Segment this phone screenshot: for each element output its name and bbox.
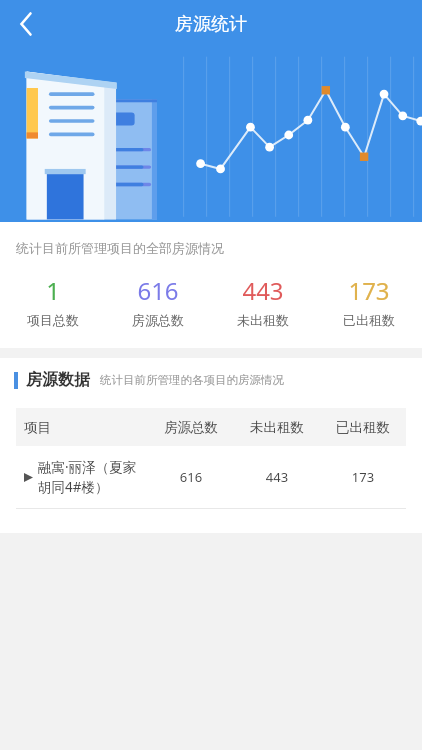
staticText: 项目	[24, 419, 148, 436]
staticText: 未出租数	[234, 419, 320, 436]
staticText: 已出租数	[320, 419, 406, 436]
staticText: 统计目前所管理的各项目的房源情况	[100, 373, 284, 387]
staticText: 融寓·丽泽（夏家胡同4#楼）	[38, 458, 148, 496]
staticText: 房源总数	[148, 419, 234, 436]
staticText: 616	[148, 468, 234, 486]
staticText: 已出租数	[343, 312, 395, 328]
button[interactable]: 融寓·丽泽（夏家胡同4#楼）	[16, 446, 406, 508]
staticText: 未出租数	[237, 312, 289, 328]
staticText: 616	[137, 274, 179, 307]
button[interactable]: 173	[316, 274, 422, 328]
staticText: 统计目前所管理项目的全部房源情况	[16, 240, 224, 256]
staticText: 443	[234, 468, 320, 486]
button[interactable]: Back	[0, 0, 48, 48]
staticText: 房源统计	[175, 13, 247, 36]
staticText: 443	[242, 274, 284, 307]
staticText: 房源数据	[26, 370, 90, 390]
button[interactable]: 1	[0, 274, 105, 328]
staticText: 1	[46, 274, 60, 307]
button[interactable]: 443	[210, 274, 316, 328]
staticText: 房源总数	[132, 312, 184, 328]
button[interactable]: 616	[105, 274, 210, 328]
staticText: 173	[348, 274, 390, 307]
staticText: 项目总数	[27, 312, 79, 328]
staticText: 173	[320, 468, 406, 486]
